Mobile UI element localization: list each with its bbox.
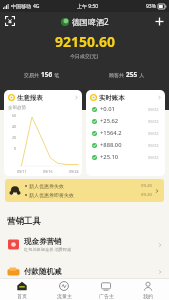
staticText: 09/22 xyxy=(148,143,159,148)
button[interactable]: 我的 xyxy=(127,279,169,300)
button[interactable]: Add xyxy=(151,13,167,29)
staticText: 4G xyxy=(33,3,40,10)
staticText: 现金券营销 xyxy=(24,237,62,246)
button[interactable]: 实时账本 xyxy=(86,90,165,176)
staticText: 人 xyxy=(138,72,145,79)
staticText: 今日成交(元) xyxy=(70,53,99,60)
button[interactable]: 德国啤酒2 xyxy=(61,16,109,27)
staticText: 92150.60 xyxy=(55,32,115,51)
staticText: 我的 xyxy=(143,293,153,299)
staticText: 60 xyxy=(12,113,17,118)
staticText: 0 xyxy=(14,146,17,151)
staticText: 156 xyxy=(41,70,53,79)
staticText: 顾客共 xyxy=(109,72,126,79)
staticText: 实时账本 xyxy=(99,94,125,102)
staticText: 红包兑换现金券 消费即减 xyxy=(24,247,72,253)
staticText: 交易共 xyxy=(24,72,41,79)
button[interactable]: 首页 xyxy=(0,279,43,300)
staticText: 新人优惠券失效 xyxy=(29,183,64,189)
staticText: 09/16 xyxy=(43,169,53,174)
staticText: 255 xyxy=(126,70,138,79)
staticText: 首页 xyxy=(17,293,27,299)
button[interactable]: 付款随机减 xyxy=(7,258,163,285)
staticText: 09-20 xyxy=(141,183,152,189)
staticText: 09/22 xyxy=(148,107,159,112)
staticText: +0.01 xyxy=(100,105,115,113)
staticText: +25.62 xyxy=(100,117,119,125)
staticText: 德国啤酒2 xyxy=(72,16,109,27)
staticText: 09/22 xyxy=(148,131,159,136)
staticText: 09/22 xyxy=(148,155,159,160)
button[interactable]: 流量主 xyxy=(43,279,85,300)
staticText: 40 xyxy=(12,124,17,129)
staticText: 付款随机减 xyxy=(24,267,62,276)
staticText: 流量主 xyxy=(57,293,72,299)
staticText: 广告主 xyxy=(99,293,114,299)
button[interactable]: 新人优惠券失效 xyxy=(9,179,160,202)
staticText: +25.10 xyxy=(100,153,119,161)
staticText: 全部趋势 xyxy=(8,105,26,111)
staticText: 上午 9:50 xyxy=(77,3,99,10)
button[interactable]: 现金券营销 xyxy=(7,231,163,258)
staticText: 09/11 xyxy=(17,169,27,174)
staticText: 20 xyxy=(12,135,17,140)
staticText: 中国移动 xyxy=(11,3,31,9)
staticText: 93% xyxy=(146,3,156,10)
staticText: 新人优惠券即将失效 xyxy=(29,192,74,198)
button[interactable]: Scan to pay xyxy=(2,13,18,29)
staticText: 09-20 xyxy=(141,192,152,198)
staticText: +888.00 xyxy=(100,141,122,149)
staticText: 笔 xyxy=(53,72,60,79)
button[interactable]: 生意报表 xyxy=(4,90,82,176)
staticText: 营销工具 xyxy=(7,216,41,227)
staticText: +1564.2 xyxy=(100,129,122,137)
staticText: 生意报表 xyxy=(17,94,43,102)
button[interactable]: 广告主 xyxy=(85,279,127,300)
staticText: 09/24 xyxy=(69,169,79,174)
staticText: 09/22 xyxy=(148,119,159,124)
